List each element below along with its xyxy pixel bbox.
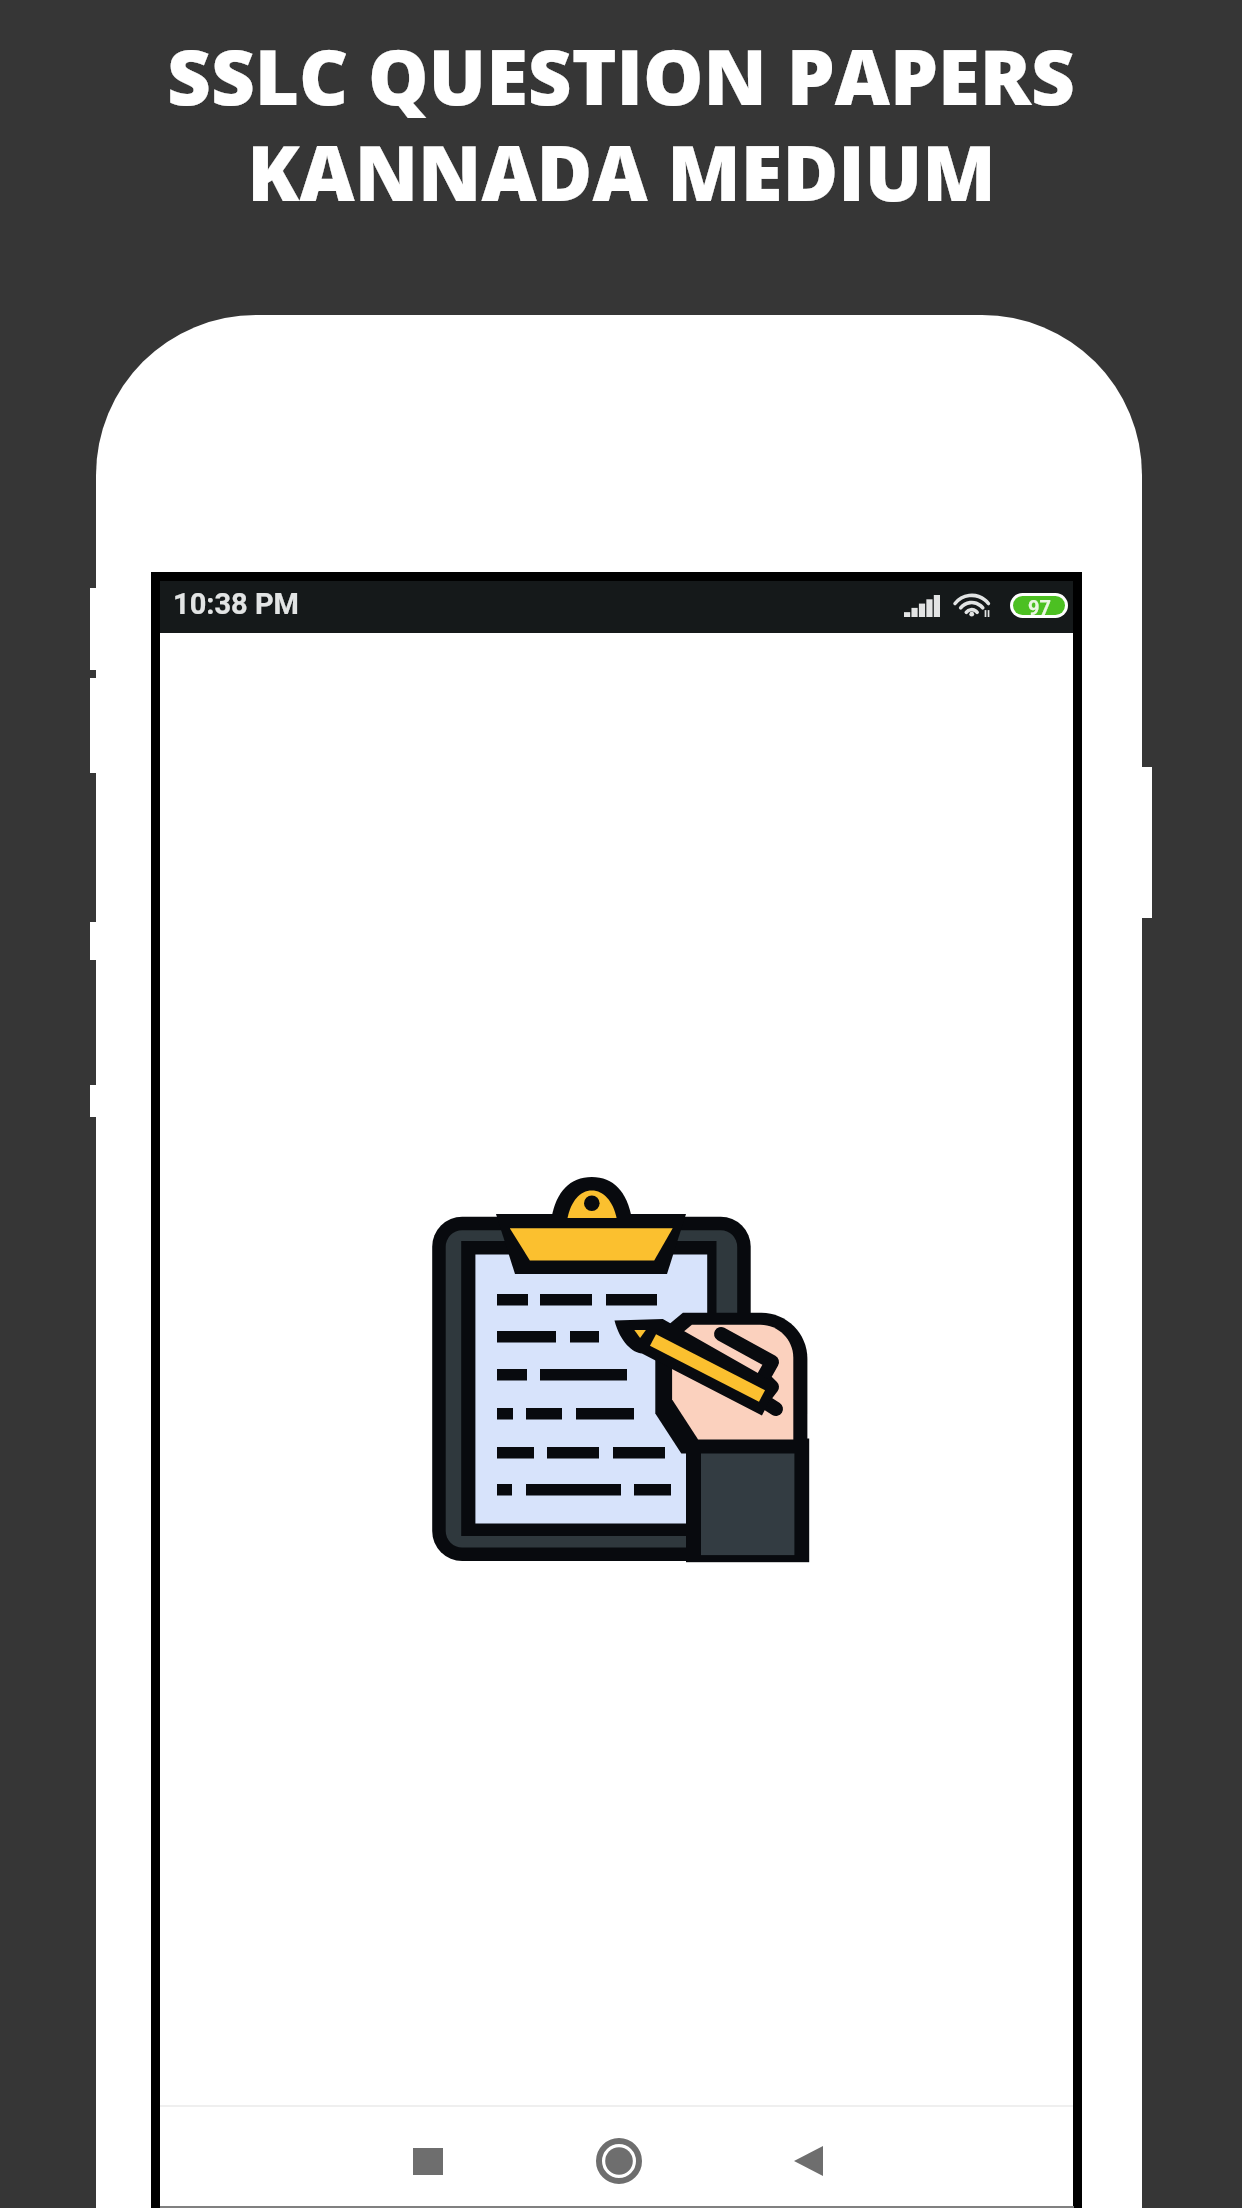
- staticText: SSLC QUESTION PAPERS: [167, 24, 1075, 127]
- staticText: 97: [1028, 596, 1051, 615]
- staticText: KANNADA MEDIUM: [247, 120, 996, 223]
- button[interactable]: Back: [758, 2111, 858, 2208]
- staticText: 10:38 PM: [173, 587, 300, 621]
- button[interactable]: Recents: [378, 2111, 478, 2208]
- button[interactable]: Home: [569, 2111, 669, 2208]
